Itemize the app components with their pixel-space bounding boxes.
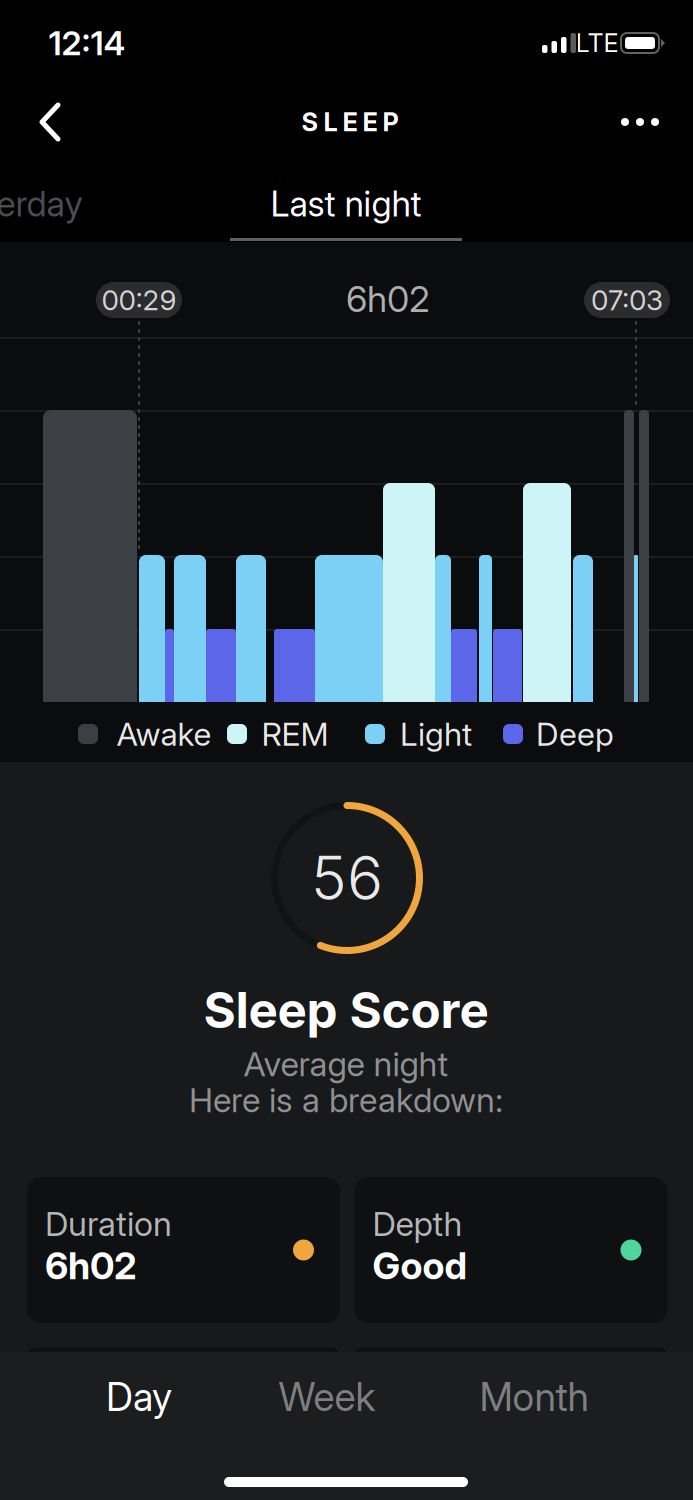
staticText: Last night [270,184,421,224]
button[interactable]: Depth [354,1177,667,1323]
button[interactable]: Last night [270,184,421,224]
button[interactable]: Day [69,1367,209,1427]
staticText: SLEEP [301,107,398,137]
staticText: Average night [243,1044,448,1084]
button[interactable]: Week [257,1367,397,1427]
staticText: Deep [536,715,614,753]
staticText: 56 [311,843,383,913]
button[interactable]: Yesterday [0,184,82,224]
staticText: 07:03 [591,283,663,316]
button[interactable]: More [612,102,668,142]
staticText: Here is a breakdown: [189,1080,503,1120]
staticText: Sleep Score [203,981,488,1039]
staticText: Awake [116,715,211,753]
staticText: Good [372,1244,467,1288]
staticText: LTE [575,28,618,58]
button[interactable]: Month [459,1367,609,1427]
button[interactable]: Back [34,101,74,143]
staticText: Day [106,1374,172,1420]
staticText: 6h02 [346,278,430,320]
staticText: 12:14 [48,23,125,63]
staticText: Light [400,715,472,753]
staticText: Depth [372,1204,462,1244]
staticText: Duration [45,1204,172,1244]
staticText: 00:29 [101,283,176,316]
button[interactable]: Duration [27,1177,340,1323]
staticText: 6h02 [45,1244,137,1288]
staticText: Month [479,1374,588,1420]
staticText: REM [261,715,328,753]
staticText: Yesterday [0,184,82,224]
staticText: Week [278,1374,375,1420]
